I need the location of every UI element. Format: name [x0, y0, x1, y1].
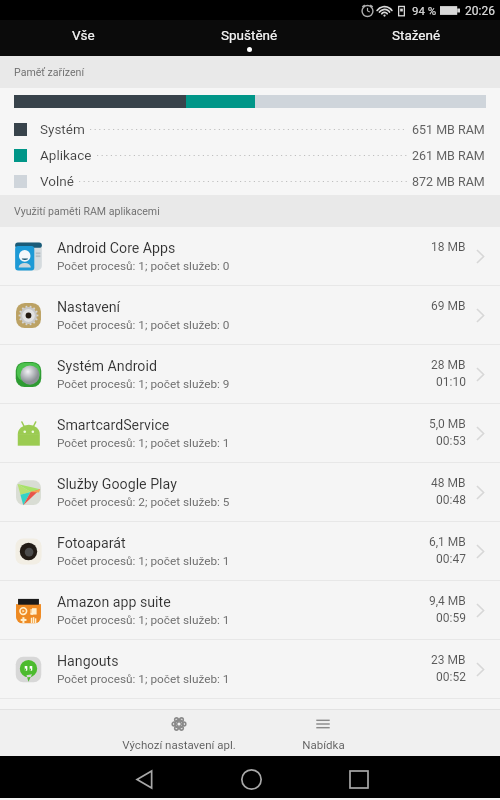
- staticText: Služby Google Play: [57, 476, 177, 493]
- staticText: Počet procesů: 1; počet služeb: 1: [57, 613, 230, 627]
- button[interactable]: Služby Google Play: [0, 463, 500, 521]
- button[interactable]: Vše: [0, 20, 166, 56]
- staticText: Počet procesů: 2; počet služeb: 5: [57, 495, 230, 509]
- staticText: Android Core Apps: [57, 240, 176, 257]
- staticText: 28 MB: [431, 358, 466, 372]
- staticText: Systém: [40, 121, 85, 137]
- staticText: 872 MB RAM: [412, 174, 485, 189]
- button[interactable]: Stažené: [333, 20, 500, 56]
- staticText: Amazon app suite: [57, 594, 171, 611]
- button[interactable]: Výchozí nastavení apl.: [107, 710, 251, 756]
- staticText: Hangouts: [57, 653, 119, 670]
- staticText: Využití paměti RAM aplikacemi: [14, 205, 160, 217]
- staticText: 00:47: [436, 552, 466, 566]
- staticText: Systém Android: [57, 358, 157, 375]
- staticText: Stažené: [392, 27, 441, 43]
- button[interactable]: Back: [109, 758, 179, 800]
- staticText: Volné: [40, 173, 74, 189]
- button[interactable]: Recents: [324, 758, 394, 800]
- staticText: Počet procesů: 1; počet služeb: 9: [57, 377, 230, 391]
- staticText: 18 MB: [431, 240, 466, 254]
- staticText: Počet procesů: 1; počet služeb: 1: [57, 554, 230, 568]
- staticText: Nastavení: [57, 299, 121, 316]
- staticText: 00:59: [436, 611, 466, 625]
- staticText: Aplikace: [40, 147, 92, 163]
- button[interactable]: Amazon app suite: [0, 581, 500, 639]
- staticText: 6,1 MB: [429, 535, 466, 549]
- button[interactable]: Nastavení: [0, 286, 500, 344]
- staticText: 00:53: [436, 434, 466, 448]
- staticText: 5,0 MB: [429, 417, 466, 431]
- staticText: 00:48: [436, 493, 466, 507]
- staticText: Spuštěné: [221, 27, 278, 43]
- staticText: 94 %: [412, 4, 437, 17]
- button[interactable]: SmartcardService: [0, 404, 500, 462]
- staticText: 651 MB RAM: [412, 122, 485, 137]
- staticText: Výchozí nastavení apl.: [122, 738, 236, 751]
- staticText: 9,4 MB: [429, 594, 466, 608]
- staticText: Nabídka: [302, 738, 345, 751]
- staticText: 20:26: [465, 4, 495, 18]
- button[interactable]: Android Core Apps: [0, 227, 500, 285]
- staticText: 01:10: [436, 375, 466, 389]
- staticText: SmartcardService: [57, 417, 170, 434]
- button[interactable]: Nabídka: [275, 710, 371, 756]
- staticText: Paměť zařízení: [14, 66, 85, 78]
- staticText: 48 MB: [431, 476, 466, 490]
- staticText: Počet procesů: 1; počet služeb: 0: [57, 259, 230, 273]
- button[interactable]: Home: [216, 758, 286, 800]
- button[interactable]: Systém Android: [0, 345, 500, 403]
- staticText: 69 MB: [431, 299, 466, 313]
- staticText: 261 MB RAM: [412, 148, 485, 163]
- staticText: Počet procesů: 1; počet služeb: 1: [57, 672, 230, 686]
- button[interactable]: Hangouts: [0, 640, 500, 698]
- staticText: Počet procesů: 1; počet služeb: 1: [57, 436, 230, 450]
- staticText: 00:52: [436, 670, 466, 684]
- staticText: 23 MB: [431, 653, 466, 667]
- staticText: Počet procesů: 1; počet služeb: 0: [57, 318, 230, 332]
- button[interactable]: Fotoaparát: [0, 522, 500, 580]
- staticText: Fotoaparát: [57, 535, 126, 552]
- button[interactable]: Spuštěné: [166, 20, 333, 56]
- staticText: Vše: [72, 27, 95, 43]
